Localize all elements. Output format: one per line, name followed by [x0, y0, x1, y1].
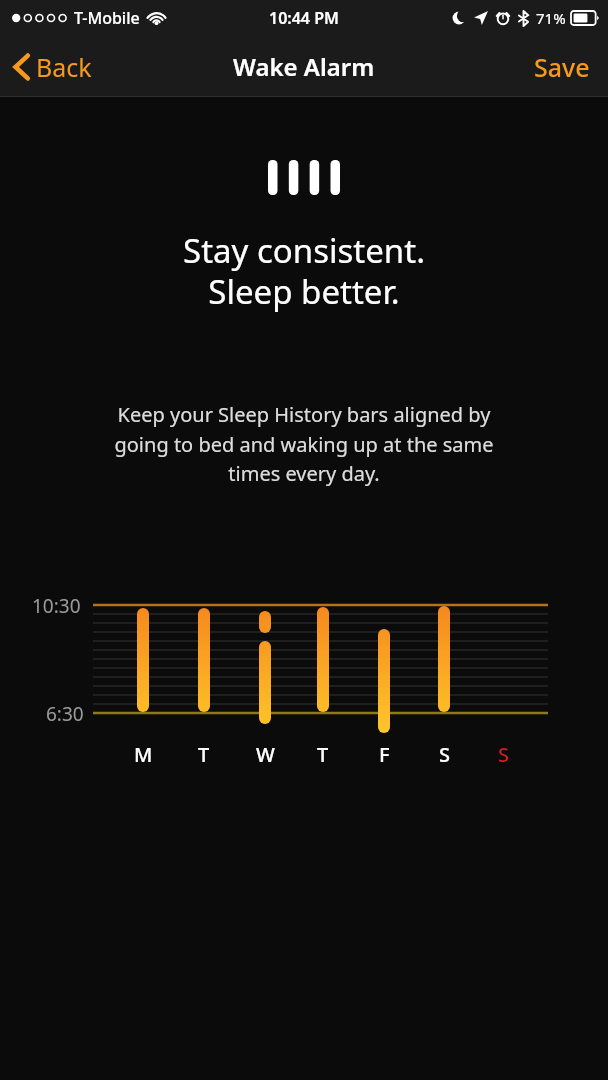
button[interactable]: Save [516, 40, 608, 94]
staticText: Back [36, 50, 92, 84]
staticText: Save [534, 50, 590, 84]
button[interactable]: Back [0, 42, 108, 92]
staticText: F [379, 741, 390, 768]
button[interactable]: S [432, 741, 456, 768]
staticText: T [317, 741, 329, 768]
staticText: Keep your Sleep History bars aligned by … [40, 401, 568, 487]
staticText: W [256, 741, 275, 768]
staticText: S [498, 741, 509, 768]
button[interactable]: T [192, 741, 216, 768]
staticText: Wake Alarm [233, 50, 375, 83]
staticText: 10:30 [32, 593, 81, 619]
button[interactable]: T [311, 741, 335, 768]
staticText: 10:44 PM [269, 7, 339, 29]
staticText: T-Mobile [74, 7, 140, 29]
button[interactable]: W [253, 741, 277, 768]
staticText: 6:30 [46, 701, 84, 727]
staticText: M [134, 741, 153, 768]
button[interactable]: M [131, 741, 155, 768]
staticText: T [198, 741, 210, 768]
button[interactable]: F [372, 741, 396, 768]
button[interactable]: S [491, 741, 515, 768]
staticText: Stay consistent. Sleep better. [183, 228, 425, 314]
staticText: S [439, 741, 450, 768]
staticText: 71% [536, 8, 566, 28]
